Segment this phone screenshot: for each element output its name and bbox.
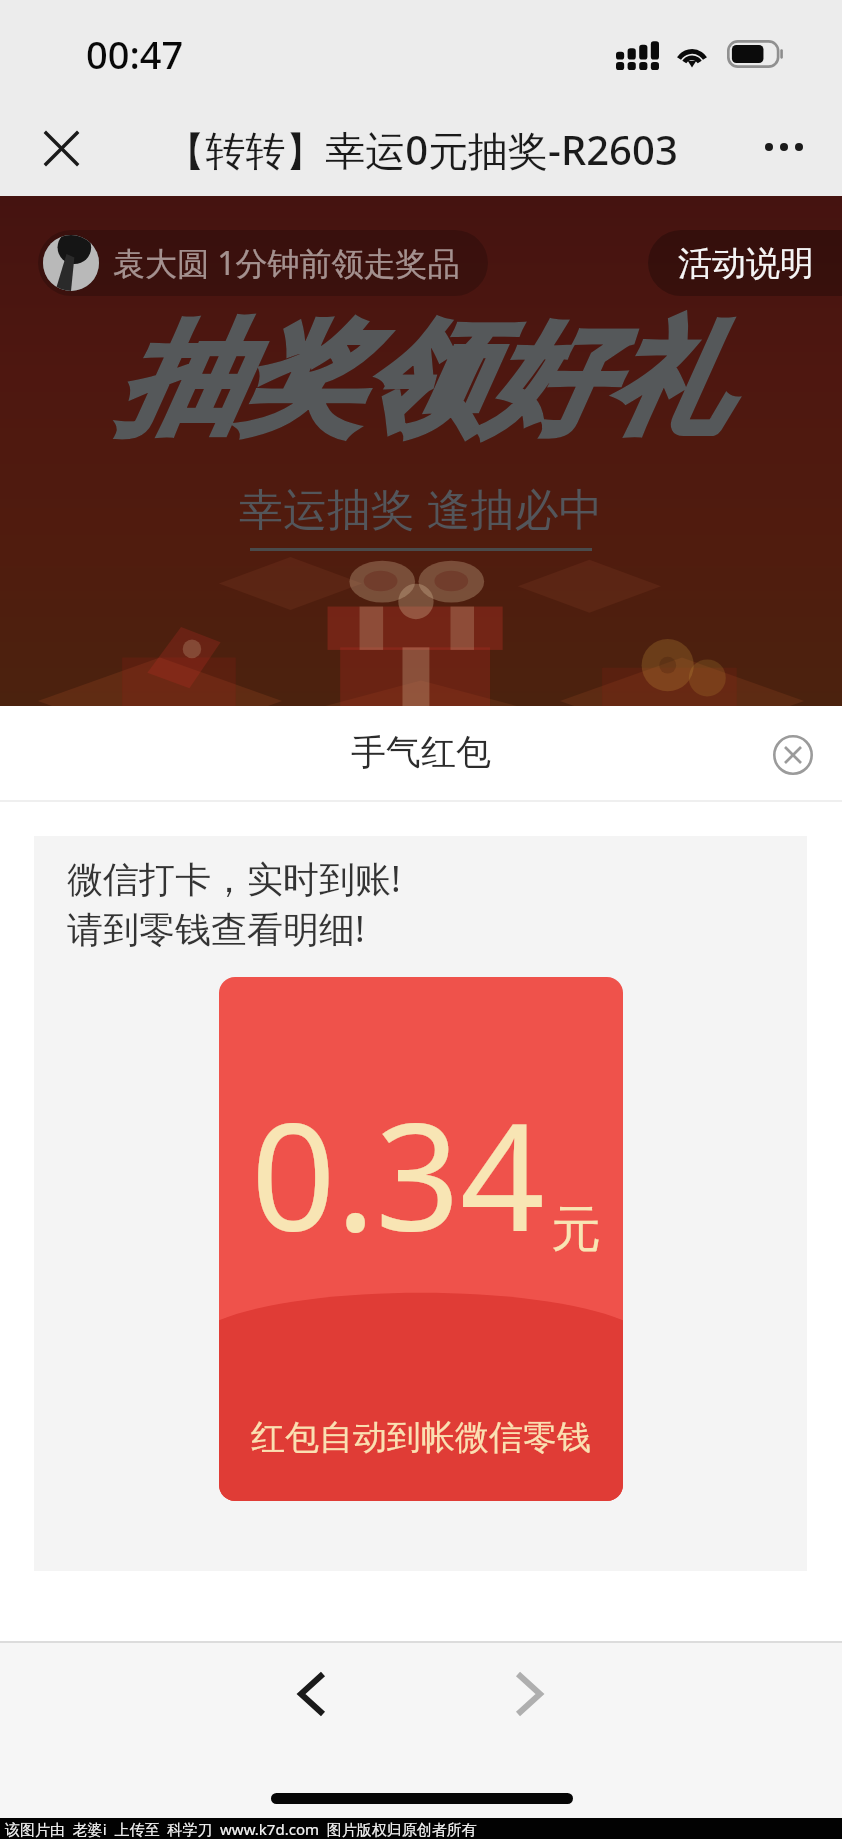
button[interactable]: Close [29,116,93,180]
staticText: 袁大圆 1分钟前领走奖品 [113,241,460,285]
staticText: 幸运抽奖 逢抽必中 [239,478,603,538]
button[interactable]: Close dialog [764,726,822,784]
button[interactable]: 袁大圆 1分钟前领走奖品 [38,230,488,296]
button[interactable]: 活动说明 [648,230,842,296]
staticText: 元 [551,1198,601,1261]
staticText: 请到零钱查看明细! [67,904,365,953]
staticText: 活动说明 [678,242,814,285]
staticText: 0.34 [251,1073,545,1275]
staticText: 抽奖领好礼 [116,304,726,458]
staticText: 该图片由 老婆i 上传至 科学刀 www.k7d.com 图片版权归原创者所有 [5,1819,477,1839]
button[interactable]: 0.34 [219,977,623,1501]
staticText: 【转转】幸运0元抽奖-R2603 [165,122,678,177]
button[interactable]: Forward [489,1654,569,1734]
button[interactable]: Back [272,1654,352,1734]
staticText: 手气红包 [351,730,491,774]
staticText: 微信打卡，实时到账! [67,854,401,903]
button[interactable]: More options [748,111,820,183]
staticText: 红包自动到帐微信零钱 [251,1416,591,1459]
staticText: 00:47 [86,28,184,80]
